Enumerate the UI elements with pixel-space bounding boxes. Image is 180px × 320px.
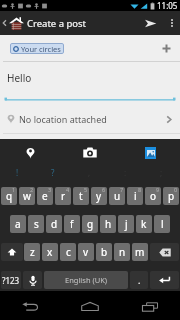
- button[interactable]: r: [55, 187, 71, 205]
- button[interactable]: w: [19, 187, 35, 205]
- staticText: q: [6, 189, 13, 203]
- staticText: 2: [30, 187, 34, 193]
- button[interactable]: Add circles: [155, 37, 177, 59]
- staticText: !: [16, 167, 19, 178]
- staticText: i: [134, 189, 137, 203]
- staticText: k: [141, 217, 147, 231]
- staticText: 9: [156, 187, 160, 193]
- button[interactable]: Backspace: [150, 243, 179, 261]
- staticText: .: [138, 274, 141, 286]
- staticText: f: [70, 217, 74, 231]
- button[interactable]: Camera: [60, 139, 120, 166]
- staticText: s: [34, 217, 39, 231]
- button[interactable]: a: [10, 215, 26, 233]
- staticText: b: [101, 245, 108, 259]
- button[interactable]: Your circles: [10, 43, 64, 54]
- staticText: v: [83, 245, 89, 259]
- staticText: o: [150, 189, 157, 203]
- staticText: w: [23, 189, 31, 203]
- button[interactable]: c: [60, 243, 76, 261]
- button[interactable]: j: [118, 215, 134, 233]
- button[interactable]: Back: [0, 291, 60, 320]
- button[interactable]: x: [42, 243, 58, 261]
- staticText: 0: [174, 187, 178, 193]
- button[interactable]: Send: [137, 11, 163, 35]
- staticText: No location attached: [19, 113, 107, 125]
- staticText: t: [79, 189, 83, 203]
- staticText: c: [66, 245, 71, 259]
- button[interactable]: d: [46, 215, 62, 233]
- staticText: u: [114, 189, 121, 203]
- staticText: p: [168, 189, 175, 203]
- staticText: e: [42, 189, 48, 203]
- staticText: z: [30, 245, 35, 259]
- staticText: 7: [120, 187, 124, 193]
- staticText: 6: [102, 187, 106, 193]
- button[interactable]: No location attached: [0, 108, 180, 130]
- button[interactable]: Home: [60, 291, 120, 320]
- staticText: ?: [51, 167, 55, 178]
- staticText: m: [135, 245, 145, 259]
- staticText: y: [96, 189, 102, 203]
- staticText: x: [47, 245, 53, 259]
- button[interactable]: Navigate up: [0, 11, 87, 35]
- button[interactable]: Voice input: [23, 271, 42, 289]
- staticText: 8: [138, 187, 142, 193]
- button[interactable]: Shift: [1, 243, 23, 261]
- staticText: Your circles: [21, 44, 61, 54]
- button[interactable]: z: [24, 243, 40, 261]
- button[interactable]: Recent apps: [120, 291, 180, 320]
- button[interactable]: o: [145, 187, 161, 205]
- other: Navigate up: [2, 18, 7, 28]
- button[interactable]: t: [73, 187, 89, 205]
- button[interactable]: k: [136, 215, 152, 233]
- button[interactable]: l: [154, 215, 170, 233]
- staticText: d: [51, 217, 58, 231]
- button[interactable]: u: [109, 187, 125, 205]
- staticText: Create a post: [27, 17, 87, 30]
- button[interactable]: v: [78, 243, 94, 261]
- button[interactable]: q: [1, 187, 17, 205]
- button[interactable]: English (UK): [44, 271, 128, 289]
- button[interactable]: ?123: [1, 271, 21, 289]
- button[interactable]: n: [114, 243, 130, 261]
- button[interactable]: s: [28, 215, 44, 233]
- button[interactable]: i: [127, 187, 143, 205]
- staticText: g: [87, 217, 94, 231]
- button[interactable]: .: [130, 271, 148, 289]
- staticText: English (UK): [65, 275, 108, 285]
- button[interactable]: b: [96, 243, 112, 261]
- staticText: 4: [66, 187, 70, 193]
- staticText: 5: [84, 187, 88, 193]
- button[interactable]: Photo gallery: [120, 139, 180, 166]
- button[interactable]: More options: [163, 11, 180, 35]
- staticText: 1: [12, 187, 16, 193]
- staticText: h: [105, 217, 112, 231]
- staticText: l: [161, 217, 164, 231]
- button[interactable]: g: [82, 215, 98, 233]
- button[interactable]: Add location: [0, 139, 60, 166]
- staticText: ?123: [2, 275, 20, 286]
- button[interactable]: Enter: [150, 271, 179, 289]
- staticText: 11:05: [157, 0, 178, 11]
- button[interactable]: p: [163, 187, 179, 205]
- staticText: j: [125, 217, 128, 231]
- staticText: n: [119, 245, 126, 259]
- staticText: 3: [48, 187, 52, 193]
- button[interactable]: m: [132, 243, 148, 261]
- button[interactable]: e: [37, 187, 53, 205]
- button[interactable]: f: [64, 215, 80, 233]
- staticText: Hello: [7, 71, 32, 85]
- staticText: r: [61, 189, 66, 203]
- button[interactable]: y: [91, 187, 107, 205]
- staticText: a: [15, 217, 21, 231]
- button[interactable]: h: [100, 215, 116, 233]
